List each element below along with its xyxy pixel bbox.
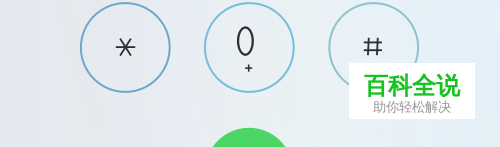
staticText: 助你轻松解决 bbox=[373, 99, 451, 115]
button[interactable]: Star bbox=[79, 1, 171, 93]
button[interactable]: Number sign bbox=[328, 1, 420, 93]
button[interactable]: Call bbox=[205, 128, 293, 147]
staticText: 百科全说 bbox=[364, 71, 460, 101]
button[interactable]: Zero, plus bbox=[203, 1, 295, 93]
